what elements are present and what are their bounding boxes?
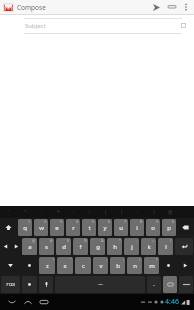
staticText: x (63, 262, 67, 270)
staticText: d (62, 243, 66, 251)
staticText: g (96, 243, 100, 251)
button[interactable]: a (22, 238, 37, 255)
button[interactable]: Enter (175, 238, 193, 255)
staticText: , (41, 209, 43, 216)
staticText: j (131, 243, 133, 251)
button[interactable]: Home (20, 294, 36, 310)
button[interactable]: Emoji (22, 276, 37, 293)
button[interactable]: / (146, 206, 162, 218)
button[interactable]: t (82, 219, 96, 236)
button[interactable]: z (39, 257, 55, 274)
button[interactable]: Attach file (164, 0, 180, 14)
button[interactable]: " (17, 206, 34, 218)
staticText: @ (168, 209, 173, 216)
staticText: ?123 (6, 282, 15, 287)
staticText: ( (170, 238, 172, 243)
staticText: " (24, 209, 27, 216)
button[interactable]: j (124, 238, 139, 255)
button[interactable]: b (110, 257, 125, 274)
staticText: ' (89, 257, 90, 262)
button[interactable]: Add recipients (177, 19, 191, 33)
button[interactable]: Hide keyboard (179, 276, 193, 293)
button[interactable]: Subject (0, 19, 194, 33)
button[interactable]: e (50, 219, 64, 236)
staticText: h (113, 243, 117, 251)
staticText: # (50, 238, 53, 243)
button[interactable]: ?123 (1, 276, 20, 293)
button[interactable]: ( (98, 206, 114, 218)
button[interactable]: Space (55, 276, 145, 293)
staticText: r (72, 224, 75, 232)
staticText: % (84, 238, 87, 243)
button[interactable]: ; (82, 206, 98, 218)
staticText: / (153, 209, 155, 216)
staticText: * (119, 238, 121, 243)
button[interactable]: ) (114, 206, 130, 218)
staticText: 0 (172, 219, 175, 224)
button[interactable]: v (93, 257, 108, 274)
button[interactable]: x (57, 257, 73, 274)
button[interactable]: h (107, 238, 122, 255)
button[interactable]: n (127, 257, 142, 274)
button[interactable]: Period (161, 257, 176, 274)
button[interactable]: Backspace (178, 219, 193, 236)
staticText: v (99, 262, 103, 270)
button[interactable]: u (114, 219, 128, 236)
staticText: 3 (60, 219, 63, 224)
button[interactable]: p (162, 219, 176, 236)
button[interactable]: Switch keyboard (163, 276, 177, 293)
button[interactable]: More options (180, 0, 192, 14)
button[interactable]: * (50, 206, 66, 218)
staticText: n (133, 262, 137, 270)
staticText: " (70, 257, 72, 262)
button[interactable]: Move left (1, 238, 10, 255)
button[interactable]: . (147, 276, 161, 293)
staticText: ; (123, 257, 124, 262)
staticText: . (153, 281, 155, 288)
button[interactable]: Next (178, 257, 193, 274)
button[interactable]: Shift (1, 219, 16, 236)
staticText: ; (89, 209, 91, 216)
button[interactable]: Navigate up (3, 2, 14, 13)
button[interactable]: m (144, 257, 159, 274)
button[interactable]: o (146, 219, 160, 236)
button[interactable]: Back (4, 294, 20, 310)
button[interactable]: k (141, 238, 156, 255)
button[interactable]: d (56, 238, 71, 255)
staticText: 4 (76, 219, 79, 224)
staticText: : (73, 209, 75, 216)
staticText: w (39, 224, 44, 232)
button[interactable]: w (34, 219, 48, 236)
button[interactable]: f (73, 238, 88, 255)
button[interactable]: q (18, 219, 32, 236)
button[interactable]: Move right (12, 238, 20, 255)
staticText: e (55, 224, 59, 232)
staticText: + (152, 238, 155, 243)
button[interactable]: Send (148, 0, 164, 14)
staticText: 4:46 (165, 297, 179, 307)
button[interactable]: s (39, 238, 54, 255)
button[interactable]: Recent apps (36, 294, 52, 310)
button[interactable]: Symbols (1, 257, 19, 274)
staticText: s (45, 243, 48, 251)
button[interactable]: y (98, 219, 112, 236)
staticText: p (167, 224, 171, 232)
staticText: - (136, 238, 138, 243)
staticText: & (101, 238, 104, 243)
staticText: * (57, 209, 60, 216)
button[interactable]: i (130, 219, 144, 236)
button[interactable]: @ (162, 206, 178, 218)
button[interactable]: l (158, 238, 173, 255)
button[interactable]: r (66, 219, 80, 236)
staticText: b (116, 262, 120, 270)
button[interactable]: c (75, 257, 91, 274)
button[interactable]: Voice input (39, 276, 53, 293)
button[interactable]: Shift (21, 257, 37, 274)
staticText: 8 (140, 219, 143, 224)
button[interactable]: g (90, 238, 105, 255)
